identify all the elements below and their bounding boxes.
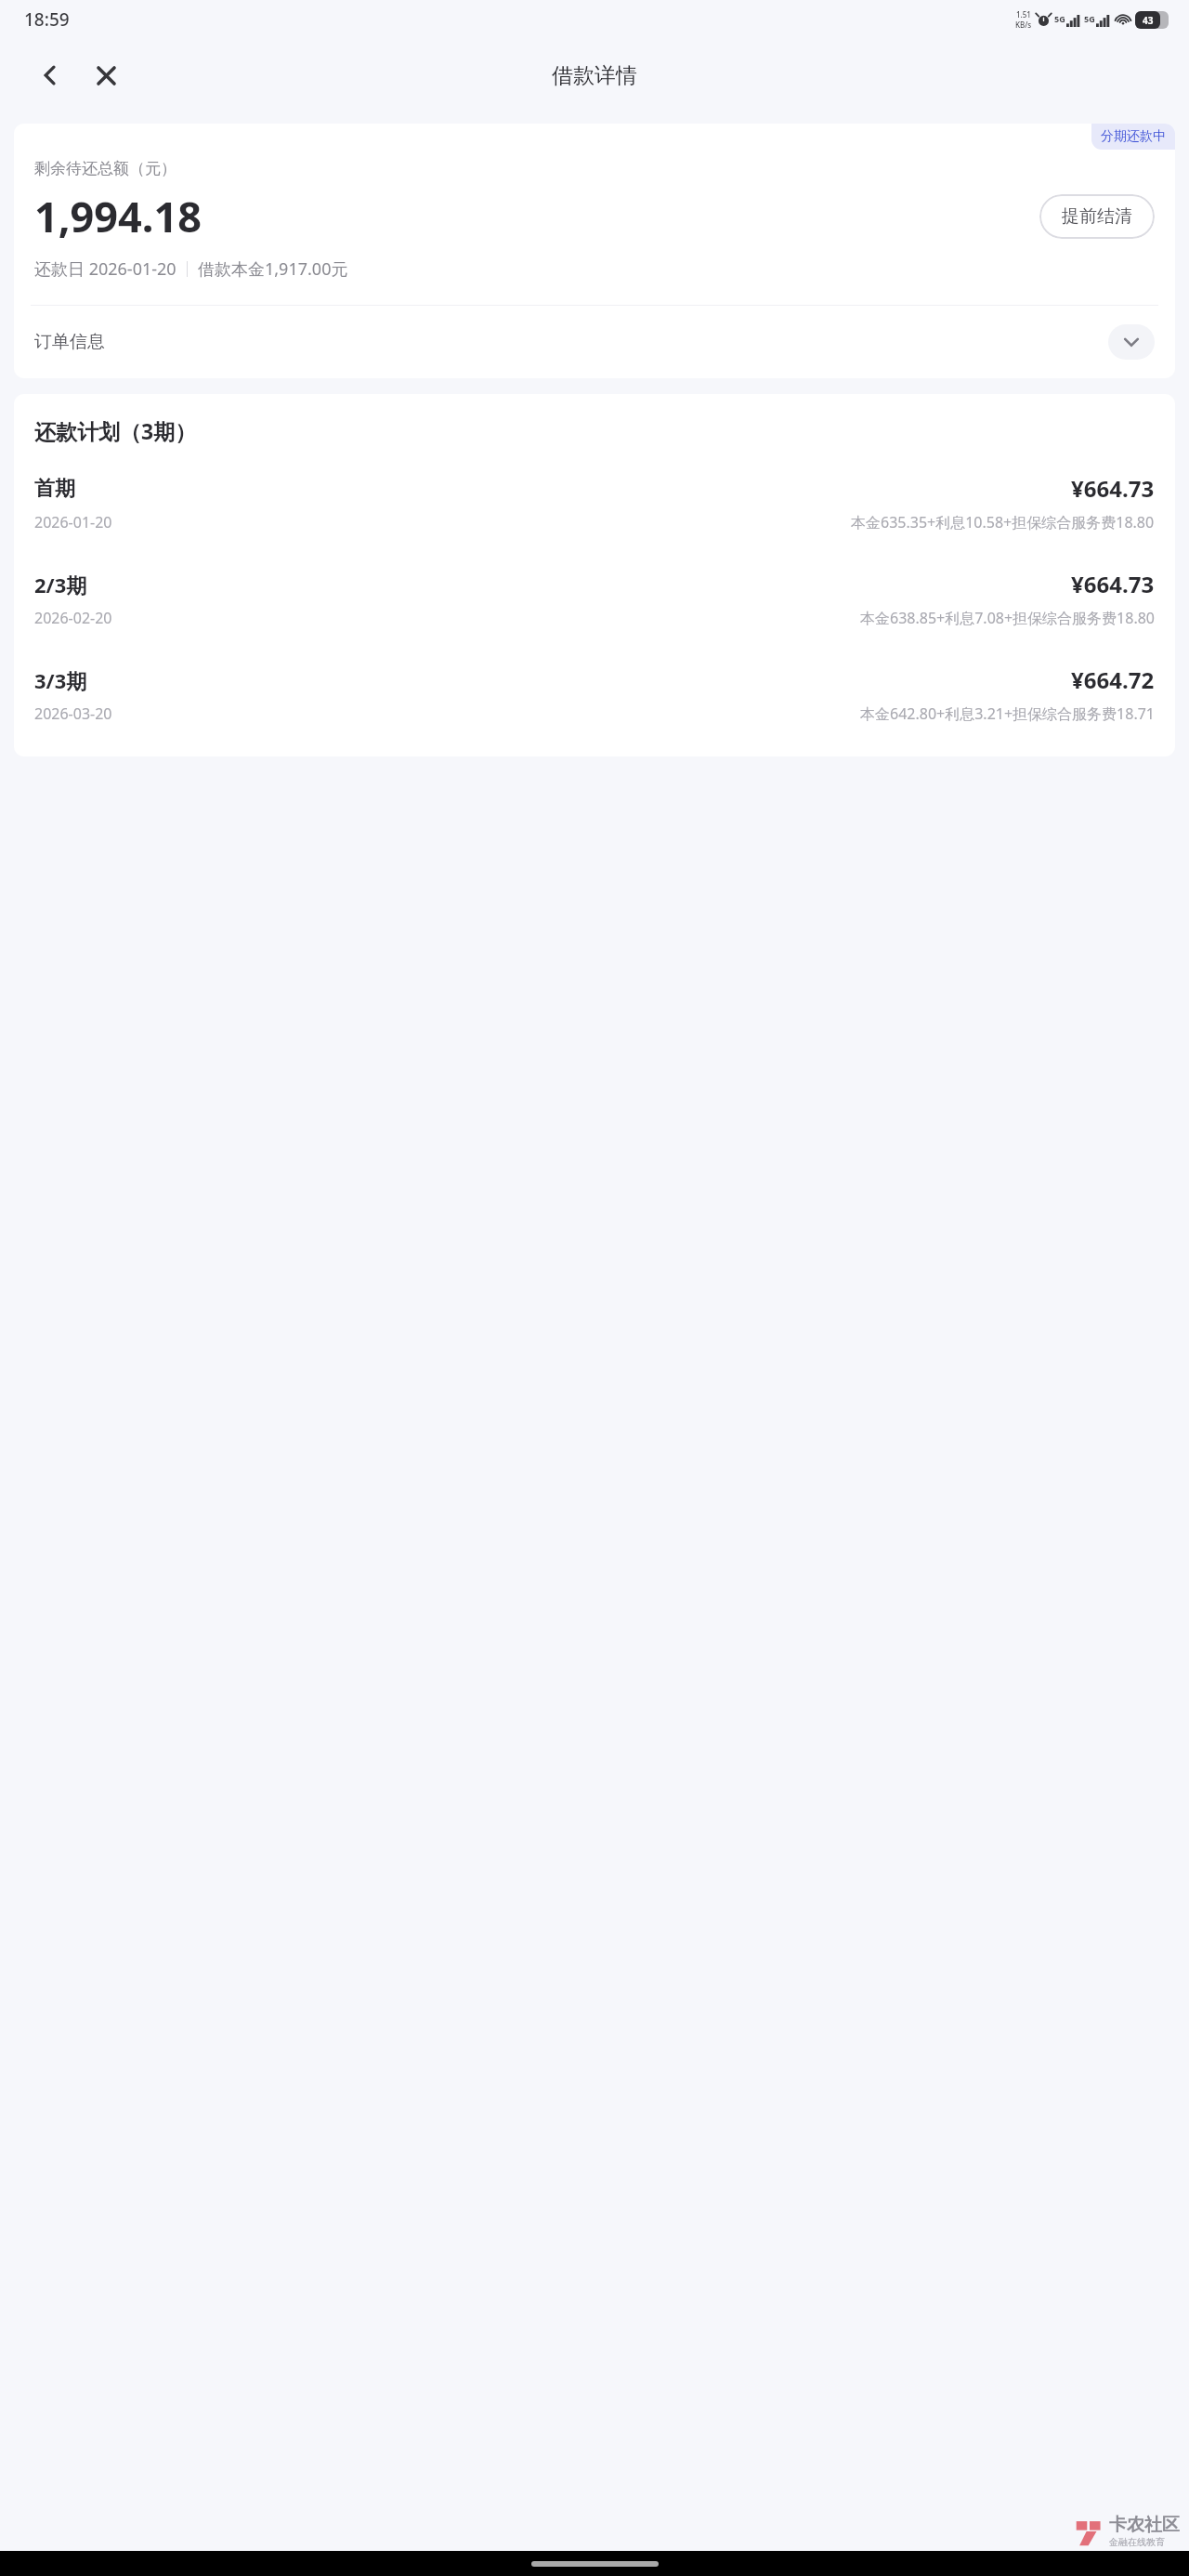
button[interactable]: Back	[26, 51, 74, 99]
button[interactable]: 2/3期	[14, 563, 1175, 634]
staticText: 借款本金1,917.00元	[198, 257, 348, 281]
staticText: KB/s	[1015, 20, 1032, 30]
staticText: 还款计划（3期）	[34, 416, 197, 445]
staticText: 分期还款中	[1101, 128, 1166, 145]
staticText: 2/3期	[34, 571, 87, 598]
staticText: 1.51	[1016, 9, 1031, 20]
staticText: ¥664.73	[1071, 473, 1155, 504]
staticText: 5G	[1054, 13, 1065, 24]
staticText: 5G	[1084, 13, 1095, 24]
staticText: 提前结清	[1062, 205, 1132, 228]
other: Expand order info	[1108, 324, 1155, 360]
staticText: 还款日 2026-01-20	[34, 257, 176, 281]
staticText: 借款详情	[552, 62, 637, 89]
staticText: 1,994.18	[34, 188, 202, 244]
staticText: 本金642.80+利息3.21+担保综合服务费18.71	[860, 703, 1155, 724]
staticText: 金融在线教育	[1109, 2536, 1165, 2548]
staticText: ¥664.73	[1071, 569, 1155, 599]
staticText: 订单信息	[34, 331, 105, 353]
staticText: 3/3期	[34, 666, 87, 694]
staticText: 18:59	[24, 7, 70, 32]
staticText: 2026-02-20	[34, 608, 112, 628]
button[interactable]: 订单信息	[14, 306, 1175, 378]
staticText: 43	[1143, 14, 1154, 27]
staticText: 首期	[34, 476, 75, 502]
staticText: 2026-03-20	[34, 703, 112, 724]
button[interactable]: 3/3期	[14, 659, 1175, 729]
button[interactable]: Close	[82, 51, 130, 99]
staticText: 2026-01-20	[34, 512, 112, 532]
staticText: 本金638.85+利息7.08+担保综合服务费18.80	[860, 608, 1155, 628]
button[interactable]: 提前结清	[1039, 194, 1155, 239]
staticText: 本金635.35+利息10.58+担保综合服务费18.80	[851, 512, 1155, 532]
staticText: ¥664.72	[1071, 664, 1155, 695]
staticText: 卡农社区	[1109, 2514, 1180, 2536]
button[interactable]: 首期	[14, 467, 1175, 538]
staticText: 剩余待还总额（元）	[34, 159, 176, 178]
